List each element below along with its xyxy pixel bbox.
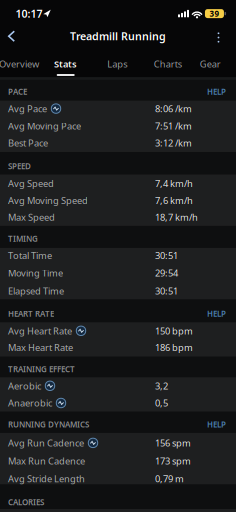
staticText: Anaerobic [8,397,52,409]
button[interactable]: Laps [102,51,132,77]
staticText: Aerobic [8,380,41,392]
button[interactable]: About Anaerobic [56,398,66,408]
button[interactable]: Charts [149,51,187,77]
staticText: Overview [0,58,39,70]
staticText: 3:12 /km [155,137,192,149]
staticText: HELP [207,86,226,97]
staticText: Avg Moving Speed [8,194,88,207]
staticText: HEART RATE [8,308,54,319]
staticText: Avg Stride Length [8,472,85,485]
staticText: Laps [107,58,127,70]
staticText: 0,79 m [155,472,184,485]
staticText: Avg Moving Pace [8,120,81,132]
button[interactable]: Stats [49,51,82,77]
staticText: HELP [207,308,226,319]
staticText: 39 [209,8,219,19]
button[interactable]: Gear [195,51,226,77]
staticText: Moving Time [8,267,63,279]
staticText: Avg Speed [8,177,54,190]
staticText: Stats [54,58,77,70]
staticText: Max Run Cadence [8,455,85,467]
staticText: Max Speed [8,211,55,223]
staticText: Avg Run Cadence [8,437,84,449]
staticText: 29:54 [155,267,178,279]
button[interactable]: HELP [204,416,229,433]
button[interactable]: About Avg Run Cadence [88,438,98,448]
staticText: Avg Heart Rate [8,325,72,337]
staticText: TIMING [8,233,38,244]
button[interactable]: About Avg Heart Rate [76,326,86,336]
staticText: 7:51 /km [155,120,192,132]
button[interactable]: About Aerobic [45,381,55,391]
staticText: 0,5 [155,397,168,409]
staticText: 156 spm [155,437,191,449]
staticText: Max Heart Rate [8,341,73,354]
button[interactable]: About Avg Pace [51,104,61,114]
staticText: CALORIES [8,497,44,507]
button[interactable]: More options [213,27,224,48]
staticText: 18,7 km/h [155,211,198,223]
staticText: RUNNING DYNAMICS [8,419,89,430]
staticText: Gear [200,58,221,70]
staticText: 186 bpm [155,341,193,354]
staticText: SPEED [8,161,31,171]
staticText: 30:51 [155,285,178,297]
button[interactable]: Overview [0,51,44,77]
staticText: 3,2 [155,380,168,392]
staticText: Best Pace [8,137,48,149]
staticText: HELP [207,419,226,430]
staticText: Avg Pace [8,102,47,115]
button[interactable]: HELP [204,305,229,322]
staticText: Elapsed Time [8,285,64,297]
staticText: 150 bpm [155,325,193,337]
button[interactable]: HELP [204,83,229,100]
staticText: Treadmill Running [70,29,166,43]
staticText: Charts [154,58,182,70]
button[interactable]: Back [3,25,20,47]
staticText: PACE [8,86,27,97]
staticText: 7,6 km/h [155,194,193,207]
staticText: 30:51 [155,249,178,262]
staticText: 8:06 /km [155,102,192,115]
staticText: TRAINING EFFECT [8,364,75,374]
staticText: 173 spm [155,455,191,467]
staticText: 7,4 km/h [155,177,193,190]
staticText: 10:17 [15,6,42,21]
staticText: Total Time [8,249,52,262]
